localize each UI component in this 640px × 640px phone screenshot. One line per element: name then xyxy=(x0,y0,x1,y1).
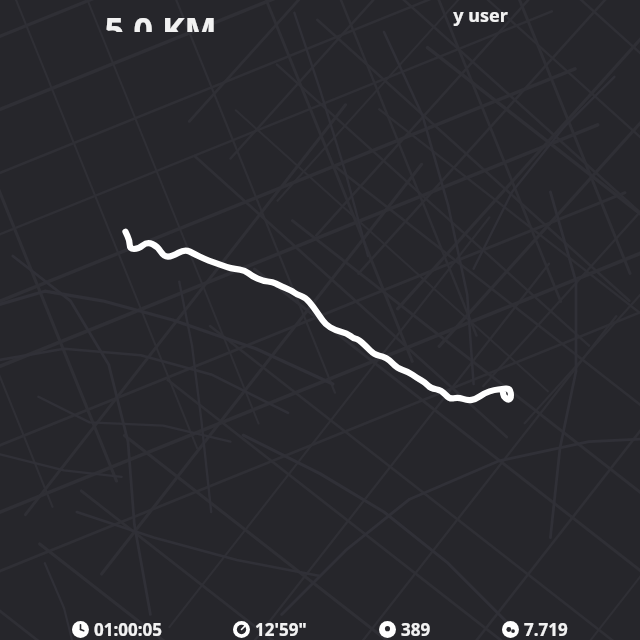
staticText: 01:00:05 xyxy=(94,618,162,640)
other: Calories xyxy=(379,621,396,638)
button[interactable]: Duration xyxy=(0,618,640,640)
staticText: 389 xyxy=(401,618,431,640)
staticText: 12'59" xyxy=(255,618,307,640)
staticText: 7.719 xyxy=(524,618,568,640)
staticText: y user xyxy=(453,3,508,28)
other: Duration xyxy=(72,621,89,638)
staticText: 5,0 KM xyxy=(104,6,217,32)
other: Steps xyxy=(502,621,519,638)
other: Pace xyxy=(233,621,250,638)
